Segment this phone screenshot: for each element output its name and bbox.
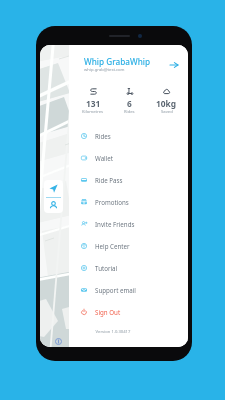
staticText: Rides bbox=[95, 132, 111, 140]
staticText: 10kg bbox=[156, 98, 177, 109]
button[interactable]: Profile bbox=[44, 197, 63, 213]
staticText: Whip GrabaWhip bbox=[84, 56, 151, 67]
staticText: Support email bbox=[95, 286, 136, 294]
staticText: Kilometres bbox=[82, 109, 104, 115]
staticText: Version 1.0.30417 bbox=[69, 329, 157, 335]
staticText: Help Center bbox=[95, 242, 130, 250]
button[interactable]: Tutorial bbox=[69, 257, 188, 279]
button[interactable]: Sign Out bbox=[69, 301, 188, 323]
button[interactable]: My location bbox=[44, 180, 63, 197]
staticText: whip.grab@test.com bbox=[84, 67, 125, 73]
staticText: 6 bbox=[127, 98, 132, 109]
staticText: Wallet bbox=[95, 154, 114, 162]
button[interactable]: Wallet bbox=[69, 147, 188, 169]
button[interactable]: Ride Pass bbox=[69, 169, 188, 191]
button[interactable]: Support email bbox=[69, 279, 188, 301]
button[interactable]: Rides bbox=[69, 125, 188, 147]
button[interactable]: Help Center bbox=[69, 235, 188, 257]
staticText: 131 bbox=[86, 98, 101, 109]
button[interactable]: Whip GrabaWhip bbox=[69, 53, 188, 75]
staticText: Sign Out bbox=[95, 308, 121, 316]
staticText: Invite Friends bbox=[95, 220, 135, 228]
staticText: Promotions bbox=[95, 198, 129, 206]
staticText: Rides bbox=[124, 109, 135, 115]
staticText: Tutorial bbox=[95, 264, 118, 272]
button[interactable]: Invite Friends bbox=[69, 213, 188, 235]
staticText: Ride Pass bbox=[95, 176, 123, 184]
button[interactable]: Promotions bbox=[69, 191, 188, 213]
button[interactable]: Info bbox=[52, 335, 64, 347]
staticText: Saved bbox=[161, 109, 173, 115]
